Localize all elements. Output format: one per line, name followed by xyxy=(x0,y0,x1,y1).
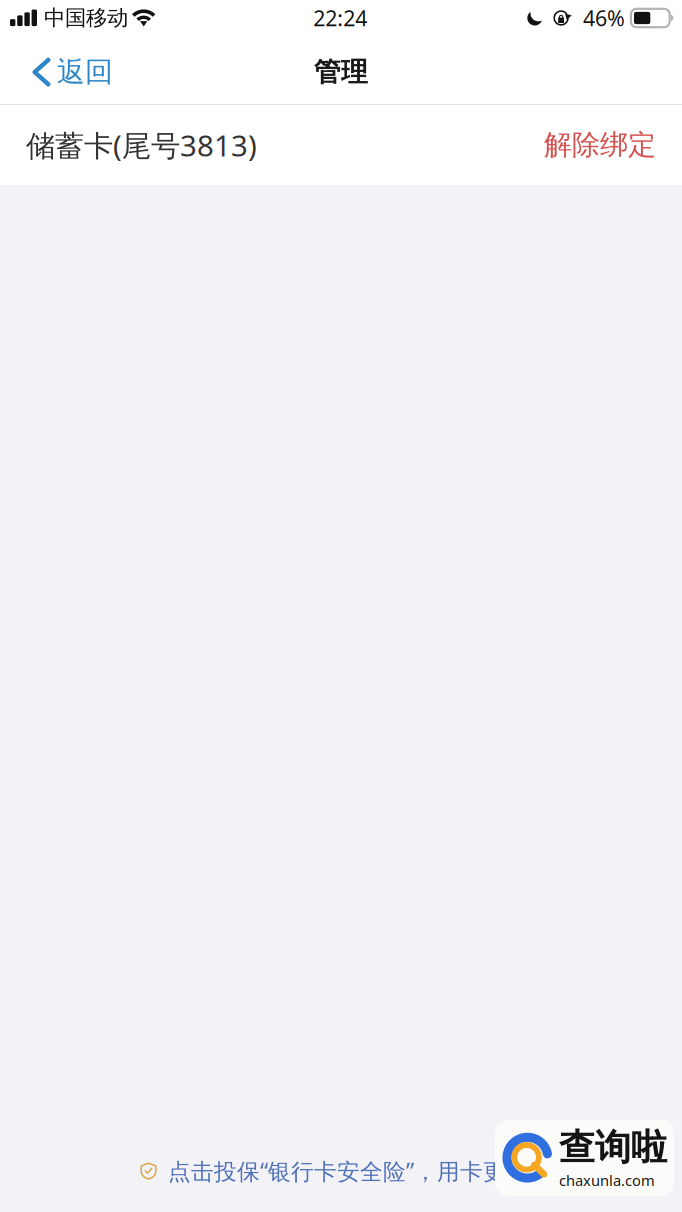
button[interactable]: 返回 xyxy=(0,40,127,104)
staticText: 中国移动 xyxy=(44,5,128,31)
staticText: 22:24 xyxy=(313,4,367,32)
staticText: 解除绑定 xyxy=(544,128,656,162)
staticText: 查询啦 xyxy=(559,1125,667,1169)
button[interactable]: 储蓄卡(尾号3813) xyxy=(0,105,682,185)
button[interactable]: 点击投保“银行卡安全险”，用卡更安心 xyxy=(0,1140,682,1212)
staticText: 储蓄卡(尾号3813) xyxy=(26,125,257,164)
staticText: chaxunla.com xyxy=(559,1170,655,1190)
staticText: 点击投保“银行卡安全险”，用卡更安心 xyxy=(168,1156,552,1186)
staticText: 46% xyxy=(583,4,625,32)
staticText: 返回 xyxy=(57,55,113,89)
staticText: 管理 xyxy=(314,56,368,88)
